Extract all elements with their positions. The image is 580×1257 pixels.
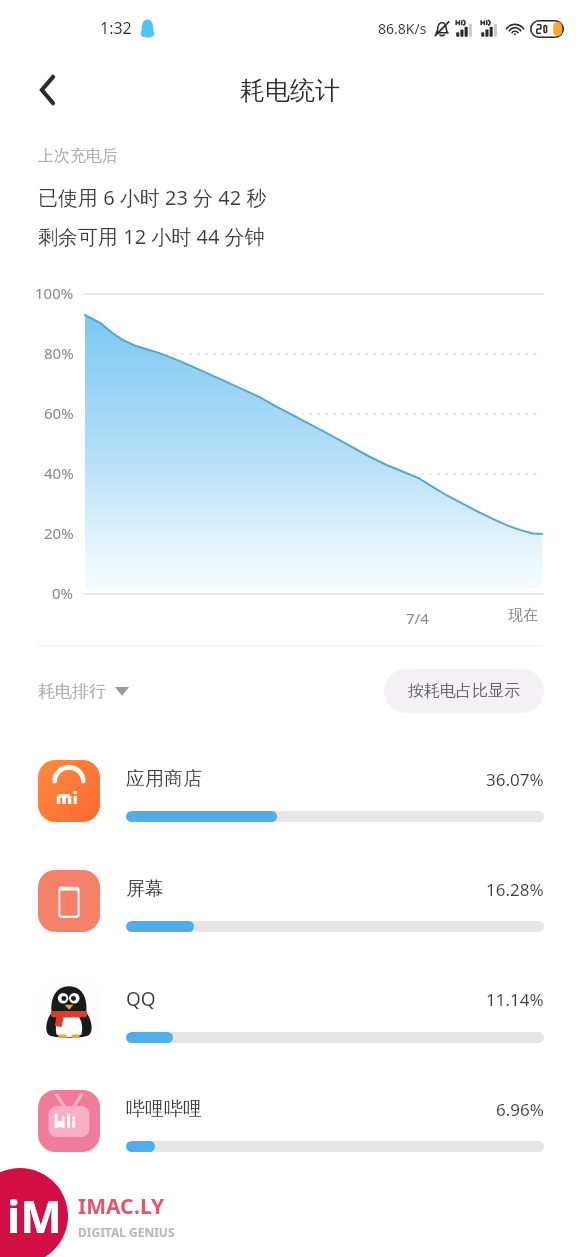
button[interactable]: 屏幕 (0, 846, 580, 956)
staticText: 哔哩哔哩 (126, 1097, 202, 1121)
staticText: 60% (44, 403, 74, 423)
staticText: QQ (126, 986, 156, 1012)
staticText: 86.8K/s (378, 19, 427, 38)
staticText: 80% (44, 343, 74, 363)
button[interactable]: 按耗电占比显示 (384, 669, 544, 713)
staticText: 0% (52, 583, 74, 603)
staticText: 耗电统计 (240, 75, 340, 106)
staticText: 36.07% (486, 768, 544, 791)
staticText: 7/4 (406, 608, 429, 628)
staticText: 已使用 6 小时 23 分 42 秒 (38, 184, 267, 211)
staticText: 屏幕 (126, 877, 164, 901)
staticText: iM (7, 1186, 62, 1246)
staticText: 100% (35, 283, 74, 303)
button[interactable]: 耗电排行 (38, 681, 129, 702)
staticText: 6.96% (496, 1098, 544, 1121)
staticText: 40% (44, 463, 74, 483)
staticText: 剩余可用 12 小时 44 分钟 (38, 223, 265, 250)
staticText: .LY (134, 1192, 165, 1221)
staticText: DIGITAL GENIUS (78, 1224, 175, 1240)
staticText: 上次充电后 (38, 146, 118, 166)
staticText: 1:32 (100, 17, 132, 39)
staticText: IMAC (78, 1192, 134, 1221)
staticText: 应用商店 (126, 767, 202, 791)
staticText: 20% (44, 523, 74, 543)
button[interactable]: 哔哩哔哩 (0, 1066, 580, 1176)
staticText: 按耗电占比显示 (408, 681, 520, 701)
button[interactable]: QQ (0, 956, 580, 1066)
staticText: 耗电排行 (38, 681, 106, 702)
staticText: 现在 (508, 606, 538, 625)
staticText: 16.28% (486, 878, 544, 901)
button[interactable]: 应用商店 (0, 736, 580, 846)
button[interactable]: 返回 (24, 66, 72, 114)
staticText: 11.14% (486, 988, 544, 1011)
